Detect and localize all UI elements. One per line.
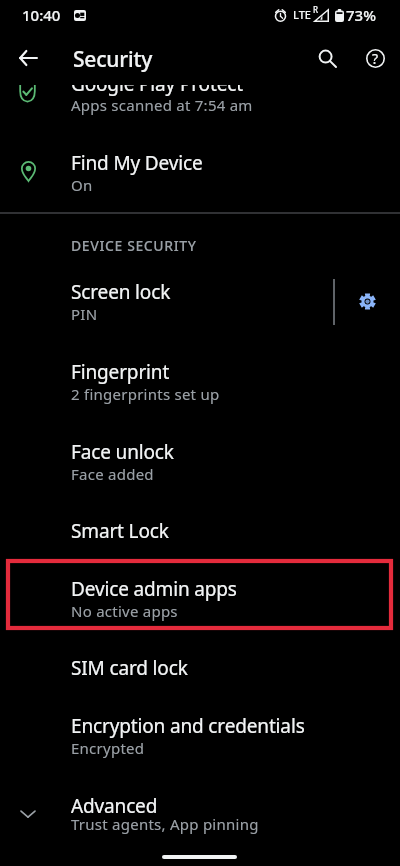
button[interactable] [0, 266, 400, 336]
button[interactable] [0, 640, 400, 694]
staticText: R [313, 4, 319, 15]
button[interactable] [0, 505, 400, 559]
staticText: ? [372, 49, 379, 68]
staticText: DEVICE SECURITY [71, 236, 197, 255]
button[interactable]: Screen lock settings [347, 281, 387, 321]
button[interactable] [0, 345, 400, 423]
staticText: Device admin apps [71, 576, 237, 602]
staticText: On [71, 175, 93, 195]
staticText: 73% [346, 5, 376, 25]
staticText: Encryption and credentials [71, 713, 305, 739]
button[interactable]: Search [307, 38, 347, 78]
button[interactable] [0, 562, 400, 628]
staticText: Trust agents, App pinning [71, 814, 259, 834]
staticText: Apps scanned at 7:54 am [71, 95, 253, 115]
button[interactable]: Navigate up [8, 38, 48, 78]
button[interactable]: Help [355, 38, 395, 78]
staticText: Security [73, 45, 153, 74]
staticText: PIN [71, 304, 98, 324]
button[interactable]: Google Play Protect [0, 85, 400, 121]
staticText: Face unlock [71, 439, 174, 465]
staticText: Find My Device [71, 150, 203, 176]
staticText: 2 fingerprints set up [71, 384, 220, 404]
button[interactable] [0, 134, 400, 208]
button[interactable] [0, 425, 400, 503]
staticText: Face added [71, 464, 154, 484]
staticText: No active apps [71, 601, 178, 621]
button[interactable] [0, 700, 400, 778]
staticText: Advanced [71, 793, 158, 819]
staticText: Encrypted [71, 738, 145, 758]
staticText: 10:40 [22, 5, 61, 25]
staticText: Fingerprint [71, 359, 170, 385]
button[interactable] [0, 780, 400, 858]
staticText: Google Play Protect [71, 85, 243, 97]
staticText: SIM card lock [71, 655, 188, 681]
staticText: LTE [293, 7, 311, 22]
staticText: Smart Lock [71, 518, 169, 544]
staticText: Screen lock [71, 279, 171, 305]
